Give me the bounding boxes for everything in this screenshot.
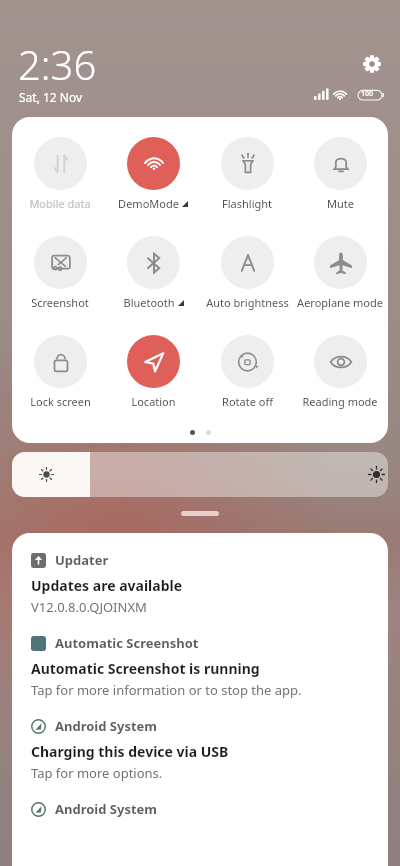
button[interactable]: Auto brightness — [201, 236, 293, 310]
staticText: Location — [131, 394, 176, 409]
staticText: Automatic Screenshot is running — [31, 659, 260, 678]
staticText: Auto brightness — [206, 295, 289, 310]
staticText: Flashlight — [222, 196, 272, 211]
button[interactable]: Settings — [356, 48, 388, 80]
button[interactable]: Mobile data — [14, 137, 106, 211]
staticText: Updater — [55, 551, 109, 569]
staticText: Mute — [327, 196, 354, 211]
staticText: Mobile data — [29, 196, 91, 211]
staticText: Rotate off — [222, 394, 273, 409]
staticText: Tap for more options. — [31, 764, 163, 782]
staticText: Lock screen — [30, 394, 91, 409]
staticText: Updates are available — [31, 576, 183, 595]
button[interactable]: Screenshot — [14, 236, 106, 310]
button[interactable]: Android System — [12, 782, 388, 818]
button[interactable]: Brightness — [12, 452, 388, 497]
staticText: Charging this device via USB — [31, 742, 229, 761]
staticText: Bluetooth — [123, 295, 175, 310]
staticText: Aeroplane mode — [297, 295, 383, 310]
staticText: Tap for more information or to stop the … — [31, 681, 302, 699]
button[interactable]: Bluetooth — [107, 236, 199, 310]
staticText: 100 — [361, 89, 374, 99]
staticText: Reading mode — [302, 394, 378, 409]
button[interactable]: DemoMode — [107, 137, 199, 211]
button[interactable]: Lock screen — [14, 335, 106, 409]
staticText: DemoMode — [118, 196, 179, 211]
button[interactable]: Flashlight — [201, 137, 293, 211]
button[interactable]: Mute — [294, 137, 386, 211]
button[interactable]: Rotate off — [201, 335, 293, 409]
staticText: Sat, 12 Nov — [19, 89, 83, 105]
staticText: 2:36 — [18, 37, 97, 91]
button[interactable]: Updater — [12, 533, 388, 616]
button[interactable]: Aeroplane mode — [294, 236, 386, 310]
staticText: Automatic Screenshot — [55, 634, 199, 652]
staticText: Android System — [55, 717, 158, 735]
staticText: Android System — [55, 800, 158, 818]
staticText: Screenshot — [31, 295, 89, 310]
button[interactable]: Location — [107, 335, 199, 409]
staticText: V12.0.8.0.QJOINXM — [31, 598, 147, 616]
button[interactable]: Android System — [12, 699, 388, 782]
button[interactable]: Automatic Screenshot — [12, 616, 388, 699]
button[interactable]: Reading mode — [294, 335, 386, 409]
